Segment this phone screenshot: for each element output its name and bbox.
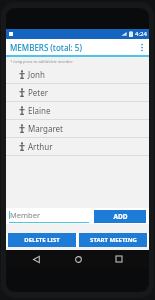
- staticText: Elaine: [28, 105, 51, 116]
- button[interactable]: Arthur: [6, 138, 149, 155]
- staticText: Peter: [28, 87, 49, 98]
- button[interactable]: Back: [25, 250, 47, 268]
- staticText: Jonh: [28, 69, 45, 80]
- button[interactable]: Margaret: [6, 120, 149, 137]
- button[interactable]: Member: [9, 208, 89, 224]
- button[interactable]: More options: [137, 39, 147, 55]
- button[interactable]: Jonh: [6, 66, 149, 83]
- button[interactable]: DELETE LIST: [8, 233, 76, 247]
- button[interactable]: Elaine: [6, 102, 149, 119]
- staticText: MEMBERS (total: 5): [10, 42, 82, 53]
- button[interactable]: ADD: [94, 210, 146, 223]
- staticText: ADD: [113, 212, 128, 221]
- staticText: Member: [10, 210, 40, 220]
- staticText: START MEETING: [90, 236, 137, 244]
- staticText: * Long press to edit/delete member: [10, 59, 73, 64]
- staticText: 4:24: [135, 30, 147, 38]
- staticText: Margaret: [28, 123, 63, 134]
- staticText: DELETE LIST: [24, 236, 60, 244]
- button[interactable]: Home: [67, 250, 89, 268]
- staticText: Arthur: [28, 141, 53, 152]
- button[interactable]: START MEETING: [79, 233, 147, 247]
- button[interactable]: Peter: [6, 84, 149, 101]
- button[interactable]: Recent apps: [108, 250, 130, 268]
